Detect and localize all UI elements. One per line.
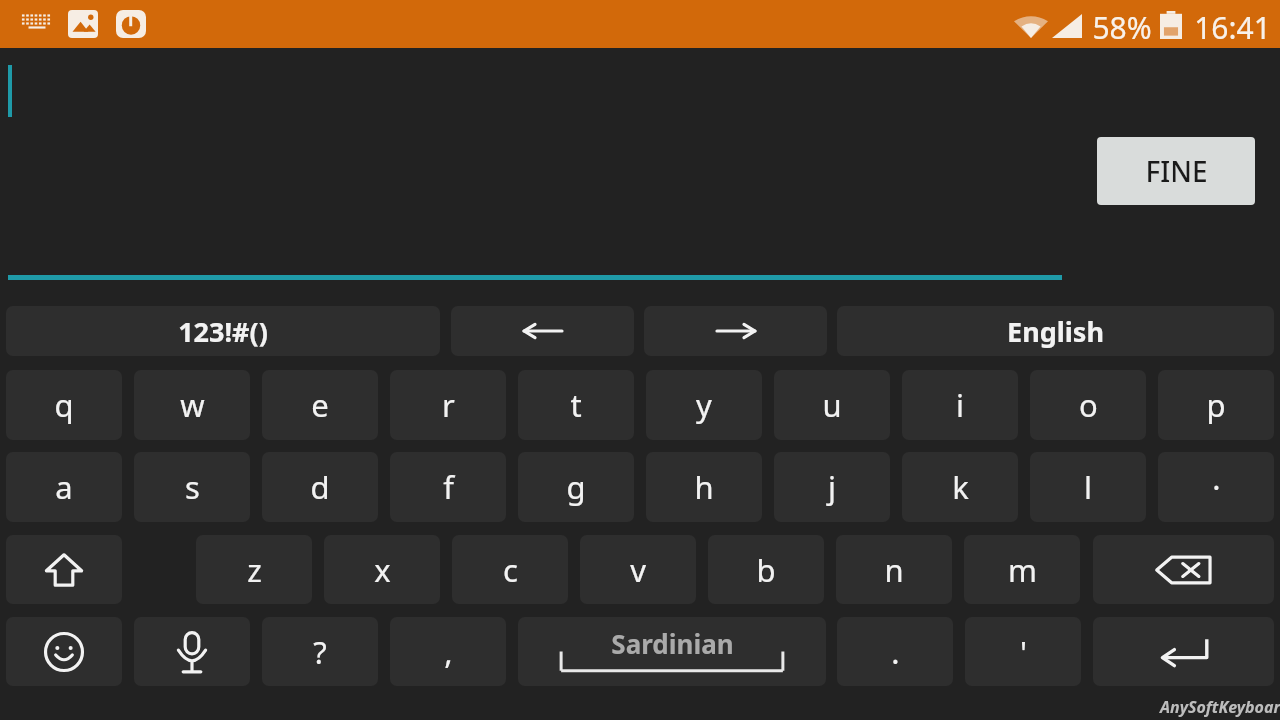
button[interactable]: · — [1158, 452, 1274, 522]
button[interactable]: Shift — [6, 535, 122, 604]
staticText: · — [1212, 466, 1221, 508]
button[interactable]: 123!#() — [6, 306, 440, 356]
button[interactable]: o — [1030, 370, 1146, 440]
button[interactable]: , — [390, 617, 506, 686]
staticText: t — [570, 384, 582, 426]
staticText: z — [247, 549, 262, 591]
staticText: ' — [1020, 631, 1027, 673]
button[interactable]: t — [518, 370, 634, 440]
staticText: j — [828, 466, 836, 508]
button[interactable]: q — [6, 370, 122, 440]
staticText: . — [891, 631, 900, 673]
button[interactable]: FINE — [1097, 137, 1255, 205]
staticText: i — [956, 384, 964, 426]
button[interactable]: Backspace — [1093, 535, 1274, 604]
staticText: n — [884, 549, 904, 591]
staticText: h — [694, 466, 714, 508]
staticText: 123!#() — [178, 313, 268, 350]
button[interactable]: w — [134, 370, 250, 440]
button[interactable]: n — [836, 535, 952, 604]
button[interactable]: j — [774, 452, 890, 522]
button[interactable]: g — [518, 452, 634, 522]
staticText: w — [180, 384, 205, 426]
staticText: y — [696, 384, 712, 426]
staticText: ? — [313, 631, 327, 673]
button[interactable]: Voice input — [134, 617, 250, 686]
staticText: , — [444, 631, 453, 673]
staticText: r — [442, 384, 455, 426]
button[interactable]: Emoji — [6, 617, 122, 686]
button[interactable]: h — [646, 452, 762, 522]
button[interactable]: ? — [262, 617, 378, 686]
button[interactable]: v — [580, 535, 696, 604]
button[interactable]: Previous — [451, 306, 634, 356]
button[interactable]: l — [1030, 452, 1146, 522]
button[interactable]: k — [902, 452, 1018, 522]
staticText: AnySoftKeyboard — [1160, 696, 1280, 718]
button[interactable]: z — [196, 535, 312, 604]
button[interactable]: c — [452, 535, 568, 604]
button[interactable]: r — [390, 370, 506, 440]
staticText: q — [54, 384, 74, 426]
staticText: 58% — [1092, 7, 1152, 48]
button[interactable]: English — [837, 306, 1274, 356]
button[interactable]: y — [646, 370, 762, 440]
button[interactable]: . — [837, 617, 953, 686]
staticText: u — [822, 384, 842, 426]
button[interactable]: b — [708, 535, 824, 604]
staticText: 16:41 — [1194, 7, 1271, 48]
staticText: x — [374, 549, 391, 591]
button[interactable]: ' — [965, 617, 1081, 686]
staticText: m — [1008, 549, 1037, 591]
button[interactable]: Next — [644, 306, 827, 356]
button[interactable]: s — [134, 452, 250, 522]
button[interactable]: d — [262, 452, 378, 522]
staticText: s — [185, 466, 200, 508]
staticText: f — [443, 466, 454, 508]
staticText: a — [55, 466, 73, 508]
button[interactable]: m — [964, 535, 1080, 604]
staticText: d — [310, 466, 330, 508]
staticText: b — [756, 549, 776, 591]
button[interactable]: p — [1158, 370, 1274, 440]
staticText: p — [1206, 384, 1226, 426]
staticText: c — [503, 549, 518, 591]
button[interactable]: Sardinian — [518, 617, 826, 686]
staticText: v — [630, 549, 646, 591]
staticText: FINE — [1145, 152, 1208, 190]
staticText: g — [566, 466, 586, 508]
staticText: o — [1079, 384, 1098, 426]
button[interactable]: u — [774, 370, 890, 440]
button[interactable]: a — [6, 452, 122, 522]
button[interactable]: Enter — [1093, 617, 1274, 686]
staticText: Sardinian — [611, 626, 734, 661]
button[interactable]: x — [324, 535, 440, 604]
button[interactable]: f — [390, 452, 506, 522]
staticText: English — [1007, 313, 1104, 350]
staticText: k — [952, 466, 969, 508]
button[interactable]: i — [902, 370, 1018, 440]
button[interactable]: e — [262, 370, 378, 440]
staticText: l — [1084, 466, 1092, 508]
staticText: e — [311, 384, 329, 426]
